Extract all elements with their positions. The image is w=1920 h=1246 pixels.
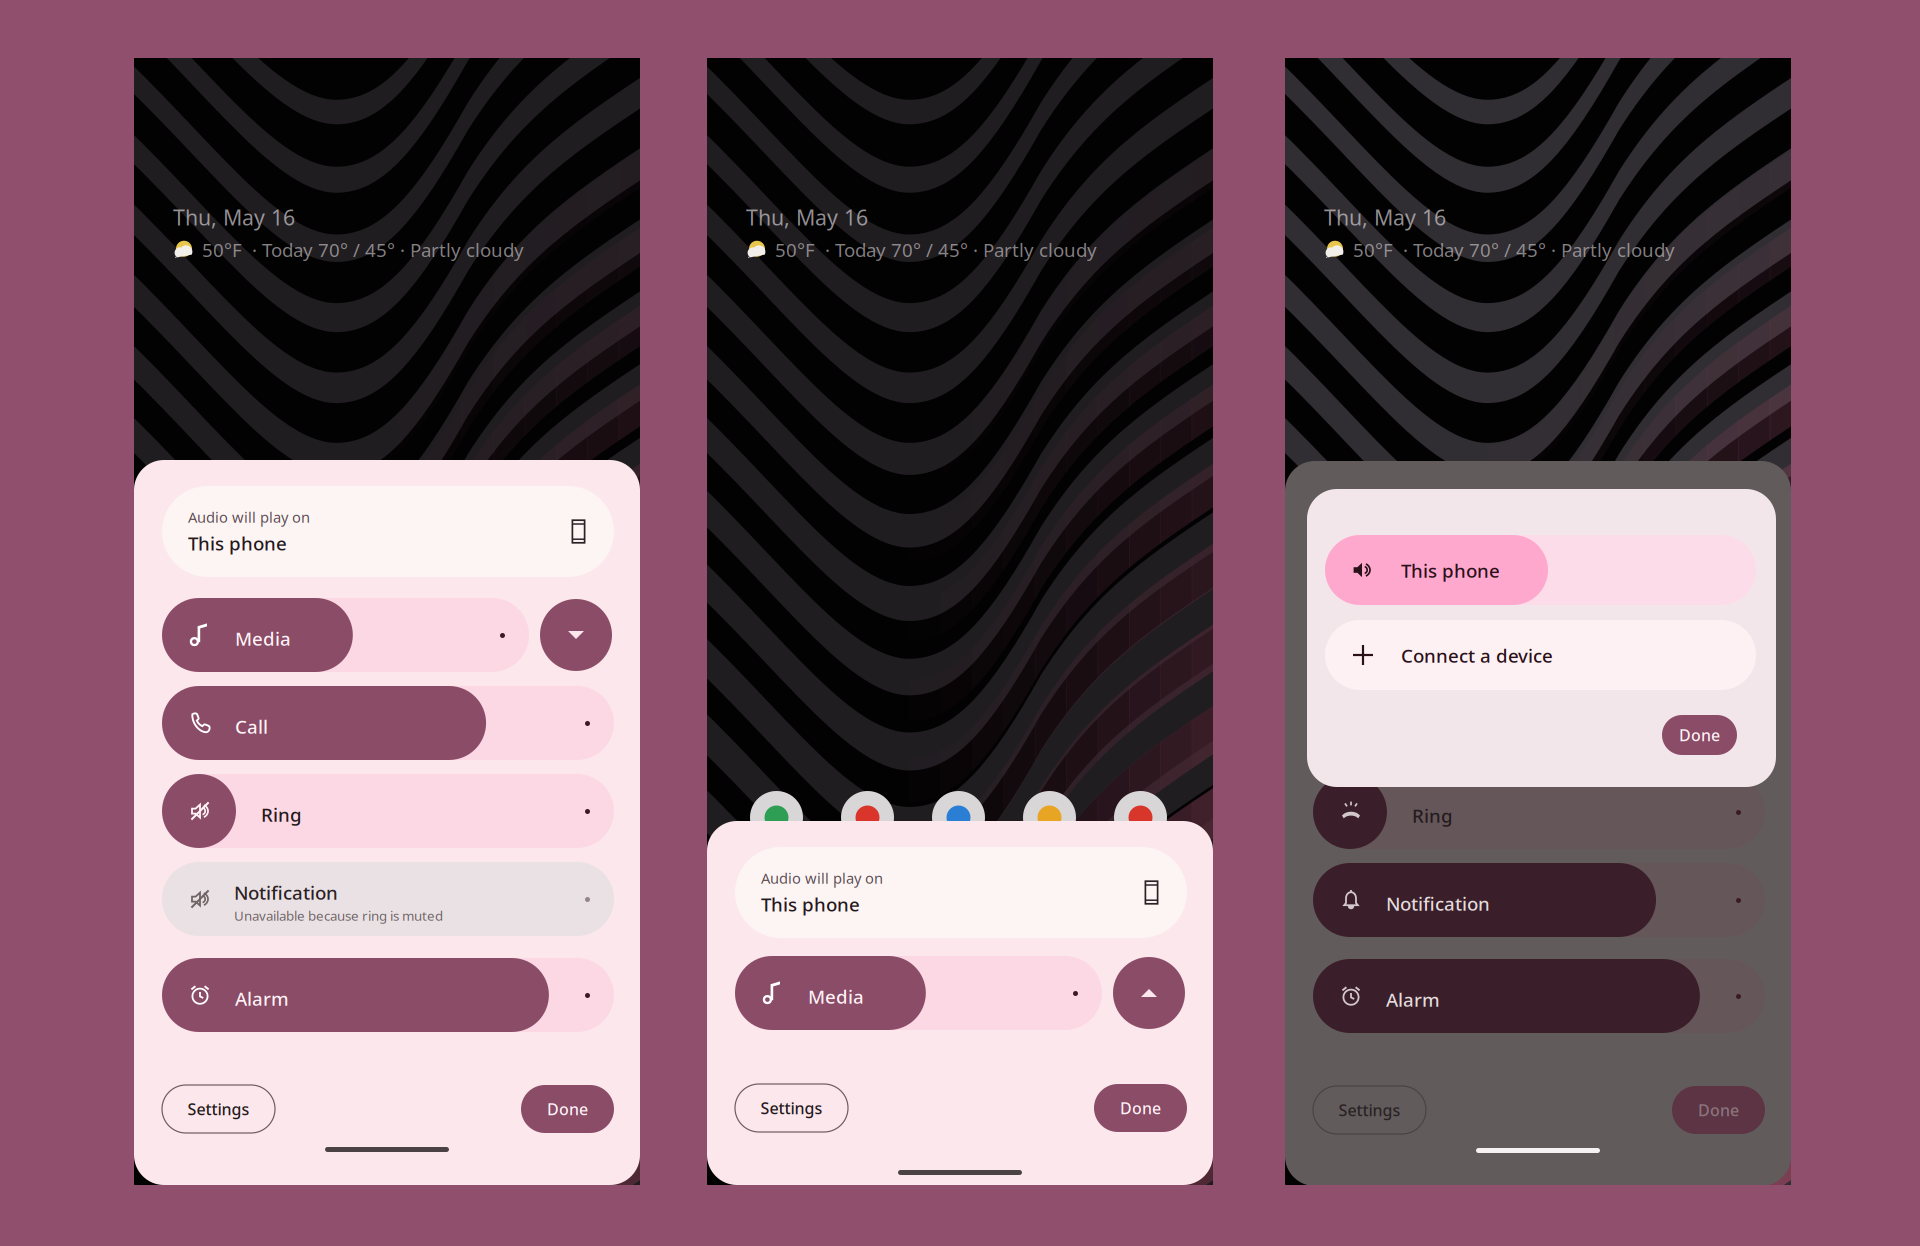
button[interactable]: Done xyxy=(1662,715,1737,755)
staticText: Thu, May 16 xyxy=(1324,203,1446,231)
button[interactable]: Call xyxy=(1313,687,1765,761)
button[interactable]: Media xyxy=(735,956,1102,1030)
staticText: Media xyxy=(808,984,864,1009)
button[interactable]: Done xyxy=(1094,1084,1187,1132)
staticText: 50°F · Today 70° / 45° · Partly cloudy xyxy=(202,237,524,262)
staticText: Done xyxy=(547,1098,588,1120)
staticText: Settings xyxy=(187,1098,249,1120)
staticText: Thu, May 16 xyxy=(746,203,868,231)
staticText: Media xyxy=(1386,627,1442,652)
staticText: Done xyxy=(1698,1099,1739,1121)
staticText: 50°F · Today 70° / 45° · Partly cloudy xyxy=(1353,237,1675,262)
staticText: Call xyxy=(235,714,268,739)
button[interactable]: Audio will play on xyxy=(735,847,1187,938)
button[interactable]: Alarm xyxy=(1313,959,1765,1033)
button[interactable]: Done xyxy=(1672,1086,1765,1134)
button[interactable]: Settings xyxy=(1313,1086,1426,1134)
button[interactable]: Done xyxy=(521,1085,614,1133)
staticText: Audio will play on xyxy=(188,507,310,527)
button[interactable]: This phone xyxy=(1325,535,1756,605)
staticText: Notification xyxy=(1386,891,1490,916)
button[interactable]: Connect a device xyxy=(1325,620,1756,690)
staticText: This phone xyxy=(188,531,287,556)
staticText: This phone xyxy=(1401,558,1500,583)
button[interactable]: Media xyxy=(1313,599,1680,673)
button[interactable]: Media xyxy=(162,598,529,672)
button[interactable]: Ring xyxy=(1313,775,1765,849)
staticText: Thu, May 16 xyxy=(173,203,295,231)
button[interactable]: Settings xyxy=(735,1084,848,1132)
button[interactable]: Collapse volume controls xyxy=(540,599,612,671)
staticText: Ring xyxy=(1412,803,1453,828)
button[interactable]: Alarm xyxy=(162,958,614,1032)
staticText: Settings xyxy=(760,1097,822,1119)
staticText: Connect a device xyxy=(1401,643,1553,668)
staticText: Done xyxy=(1679,724,1720,746)
staticText: This phone xyxy=(761,892,860,917)
staticText: Settings xyxy=(1338,1099,1400,1121)
staticText: Ring xyxy=(261,802,302,827)
button[interactable]: Notification xyxy=(162,862,614,936)
button[interactable]: Call xyxy=(162,686,614,760)
staticText: 50°F · Today 70° / 45° · Partly cloudy xyxy=(775,237,1097,262)
staticText: Done xyxy=(1120,1097,1161,1119)
staticText: Alarm xyxy=(235,986,289,1011)
button[interactable]: Audio will play on xyxy=(162,486,614,577)
button[interactable]: Ring xyxy=(162,774,614,848)
staticText: Audio will play on xyxy=(761,868,883,888)
staticText: Notification xyxy=(234,880,338,905)
button[interactable]: Notification xyxy=(1313,863,1765,937)
staticText: Unavailable because ring is muted xyxy=(234,907,443,924)
staticText: Media xyxy=(235,626,291,651)
button[interactable]: Settings xyxy=(162,1085,275,1133)
staticText: Alarm xyxy=(1386,987,1440,1012)
button[interactable]: Expand volume controls xyxy=(1113,957,1185,1029)
